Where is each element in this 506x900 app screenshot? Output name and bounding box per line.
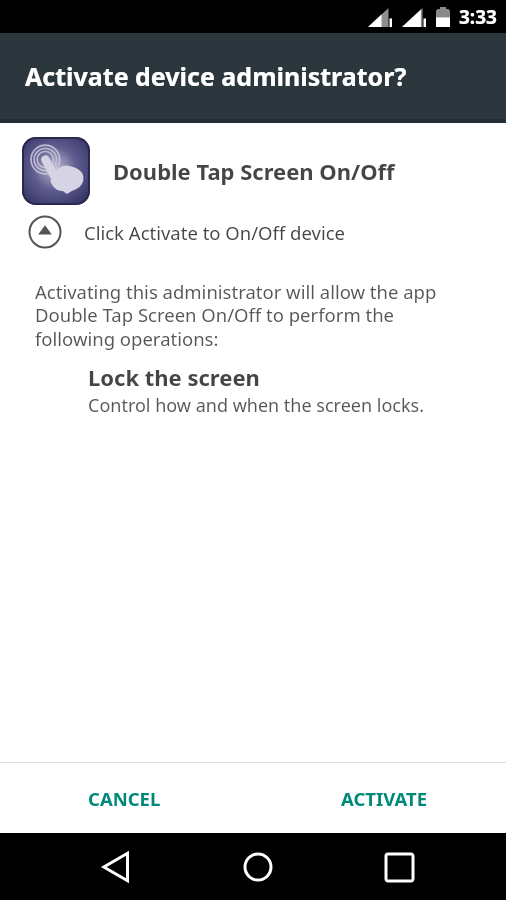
button[interactable]: ACTIVATE — [323, 770, 446, 827]
staticText: CANCEL — [88, 786, 161, 811]
staticText: 3:33 — [459, 4, 497, 30]
button[interactable]: CANCEL — [70, 770, 179, 827]
staticText: Activating this administrator will allow… — [35, 279, 437, 352]
staticText: Lock the screen — [88, 362, 260, 392]
button[interactable] — [92, 843, 140, 891]
button[interactable] — [28, 215, 62, 249]
button[interactable] — [234, 843, 282, 891]
button[interactable] — [375, 843, 423, 891]
staticText: Activate device administrator? — [25, 59, 407, 93]
staticText: ACTIVATE — [341, 786, 428, 811]
button[interactable] — [22, 137, 90, 205]
staticText: Double Tap Screen On/Off — [113, 156, 395, 186]
staticText: Control how and when the screen locks. — [88, 393, 424, 418]
staticText: Click Activate to On/Off device — [84, 220, 346, 245]
